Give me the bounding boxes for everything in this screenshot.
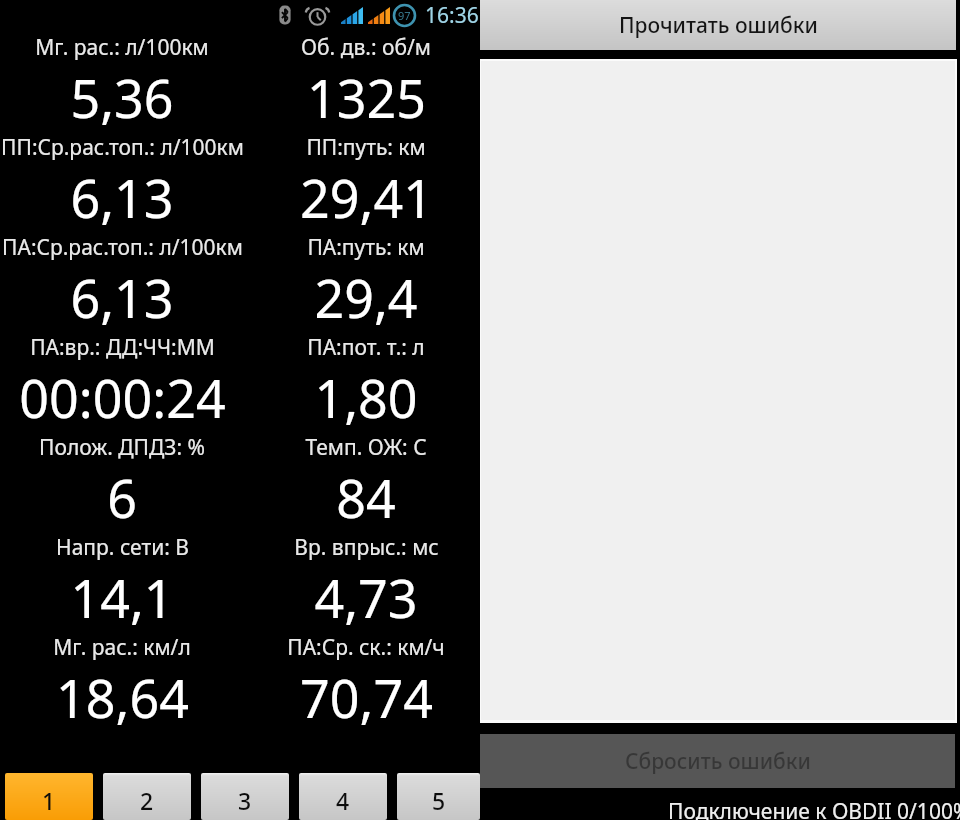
staticText: 3 (238, 785, 252, 816)
button[interactable]: Темп. ОЖ: С (244, 428, 488, 528)
button[interactable]: Об. дв.: об/м (244, 28, 488, 128)
button[interactable]: 2 (103, 773, 191, 820)
staticText: 6,13 (70, 162, 174, 233)
button[interactable]: ПА:Ср. ск.: км/ч (244, 628, 488, 728)
staticText: 4,73 (314, 562, 418, 633)
staticText: ПА:Ср.рас.топ.: л/100км (2, 233, 243, 262)
staticText: 97 (398, 8, 411, 23)
staticText: 6 (107, 462, 137, 533)
staticText: ПА:путь: км (307, 233, 425, 262)
staticText: 70,74 (300, 662, 433, 733)
staticText: 84 (336, 462, 396, 533)
staticText: ПА:вр.: ДД:ЧЧ:ММ (30, 333, 215, 362)
staticText: 16:36 (425, 1, 479, 30)
button[interactable]: 4 (299, 773, 387, 820)
staticText: 1,80 (314, 362, 418, 433)
button[interactable]: ПА:путь: км (244, 228, 488, 328)
staticText: 5 (432, 785, 446, 816)
staticText: Полож. ДПДЗ: % (39, 433, 205, 462)
button[interactable]: ПА:Ср.рас.топ.: л/100км (0, 228, 244, 328)
staticText: Напр. сети: В (56, 533, 189, 562)
staticText: Вр. впрыс.: мс (294, 533, 439, 562)
button[interactable]: 5 (397, 773, 480, 820)
staticText: ПП:путь: км (306, 133, 426, 162)
staticText: ПА:пот. т.: л (307, 333, 425, 362)
staticText: Мг. рас.: л/100км (35, 33, 209, 62)
staticText: 1 (42, 785, 56, 816)
staticText: Прочитать ошибки (619, 11, 818, 40)
button[interactable]: Сбросить ошибки (480, 734, 955, 788)
staticText: 29,41 (300, 162, 433, 233)
staticText: Подключение к OBDII 0/100% (668, 797, 960, 820)
staticText: 5,36 (70, 62, 174, 133)
other: Alarm (307, 5, 328, 26)
button[interactable]: ПП:Ср.рас.топ.: л/100км (0, 128, 244, 228)
button[interactable]: Мг. рас.: км/л (0, 628, 244, 728)
staticText: 18,64 (56, 662, 189, 733)
button[interactable]: ПП:путь: км (244, 128, 488, 228)
staticText: 6,13 (70, 262, 174, 333)
staticText: Сбросить ошибки (625, 747, 811, 776)
staticText: Мг. рас.: км/л (53, 633, 191, 662)
staticText: ПА:Ср. ск.: км/ч (287, 633, 445, 662)
button[interactable]: ПА:пот. т.: л (244, 328, 488, 428)
button[interactable]: Напр. сети: В (0, 528, 244, 628)
button[interactable]: Полож. ДПДЗ: % (0, 428, 244, 528)
staticText: 1325 (307, 62, 426, 133)
button[interactable]: Прочитать ошибки (480, 0, 956, 50)
staticText: ПП:Ср.рас.топ.: л/100км (1, 133, 244, 162)
other: Battery 97 percent (392, 3, 417, 28)
button[interactable]: ПА:вр.: ДД:ЧЧ:ММ (0, 328, 244, 428)
button[interactable]: Мг. рас.: л/100км (0, 28, 244, 128)
staticText: 14,1 (70, 562, 174, 633)
staticText: 4 (336, 785, 350, 816)
staticText: 2 (140, 785, 154, 816)
staticText: Об. дв.: об/м (301, 33, 431, 62)
other: Bluetooth (278, 5, 292, 25)
button[interactable]: 3 (201, 773, 289, 820)
staticText: 29,4 (314, 262, 418, 333)
button[interactable]: Вр. впрыс.: мс (244, 528, 488, 628)
staticText: Темп. ОЖ: С (305, 433, 427, 462)
button[interactable]: 1 (5, 773, 93, 820)
staticText: 00:00:24 (19, 362, 226, 433)
